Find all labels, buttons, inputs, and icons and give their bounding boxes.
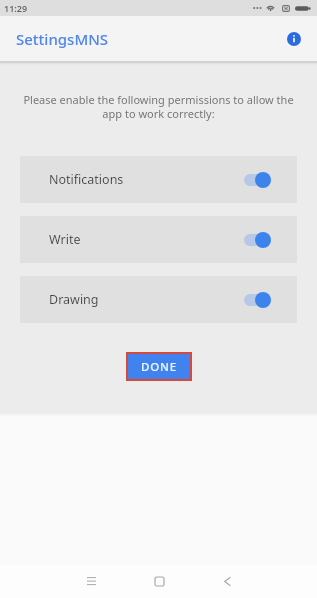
staticText: Please enable the following permissions … [16,92,301,121]
staticText: DONE [141,359,177,375]
button[interactable]: Drawing [20,276,297,323]
staticText: Drawing [49,291,99,308]
button[interactable]: Home [135,564,183,598]
button[interactable]: Notifications [20,156,297,203]
staticText: Write [49,231,81,248]
button[interactable]: Recents [67,564,115,598]
button[interactable]: Back [203,564,251,598]
button[interactable]: Write [20,216,297,263]
staticText: Notifications [49,171,124,188]
staticText: 11:29 [4,2,28,14]
button[interactable]: DONE [128,354,190,379]
button[interactable]: Info [282,27,306,51]
staticText: SettingsMNS [16,29,109,49]
